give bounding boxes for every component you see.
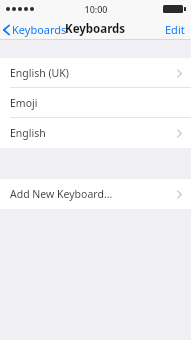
- button[interactable]: Edit: [159, 20, 191, 39]
- button[interactable]: English (UK): [0, 58, 191, 88]
- button[interactable]: Add New Keyboard...: [0, 179, 191, 209]
- staticText: Add New Keyboard...: [10, 187, 113, 201]
- staticText: Edit: [165, 22, 185, 37]
- staticText: English: [10, 126, 46, 140]
- button[interactable]: English: [0, 118, 191, 148]
- staticText: English (UK): [10, 66, 69, 80]
- staticText: 10:00: [84, 3, 108, 15]
- button[interactable]: Keyboards: [0, 20, 71, 39]
- staticText: Keyboards: [12, 22, 67, 37]
- staticText: Emoji: [10, 96, 38, 110]
- staticText: Keyboards: [65, 21, 126, 37]
- button[interactable]: Emoji: [0, 88, 191, 118]
